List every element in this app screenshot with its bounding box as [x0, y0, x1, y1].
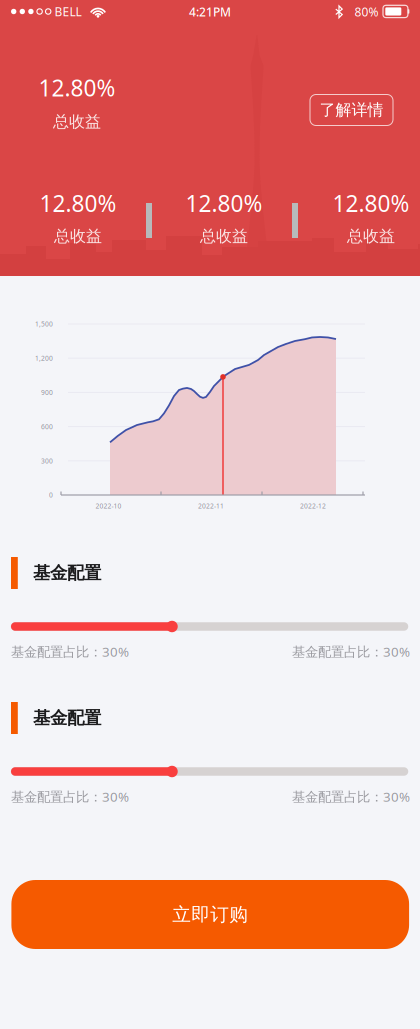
staticText: 立即订购: [172, 903, 248, 926]
staticText: 12.80%: [39, 188, 116, 218]
staticText: 基金配置: [33, 562, 101, 584]
staticText: 总收益: [200, 226, 248, 246]
staticText: 2022-12: [300, 502, 326, 510]
staticText: 总收益: [54, 226, 102, 246]
staticText: 2022-11: [198, 502, 224, 510]
staticText: 基金配置: [33, 707, 101, 729]
staticText: 12.80%: [332, 188, 409, 218]
staticText: 4:21PM: [189, 4, 231, 20]
staticText: 1,500: [35, 320, 53, 328]
staticText: BELL: [54, 3, 81, 19]
staticText: 12.80%: [185, 188, 262, 218]
staticText: 总收益: [347, 226, 395, 246]
staticText: 900: [41, 388, 53, 397]
staticText: 基金配置占比：30%: [11, 788, 129, 805]
staticText: 总收益: [53, 112, 101, 131]
staticText: 300: [41, 456, 53, 465]
staticText: 80%: [355, 4, 379, 20]
staticText: 基金配置占比：30%: [292, 643, 410, 660]
staticText: 1,200: [35, 354, 53, 363]
staticText: 2022-10: [95, 502, 121, 510]
staticText: 基金配置占比：30%: [11, 643, 129, 660]
button[interactable]: 了解详情: [310, 94, 393, 125]
staticText: 基金配置占比：30%: [292, 788, 410, 805]
staticText: 600: [41, 422, 53, 431]
staticText: 0: [49, 491, 53, 499]
staticText: 12.80%: [38, 73, 115, 103]
staticText: 了解详情: [319, 100, 383, 120]
button[interactable]: 立即订购: [11, 880, 409, 949]
